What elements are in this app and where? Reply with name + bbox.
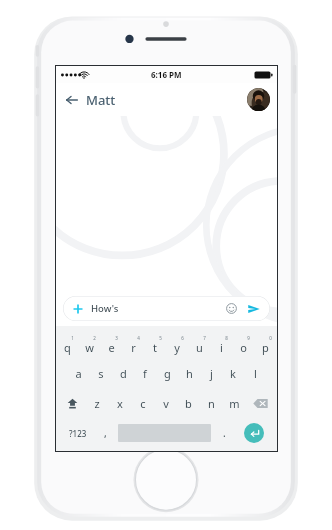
staticText: 8 xyxy=(225,335,228,341)
staticText: 6 xyxy=(181,335,184,341)
staticText: e xyxy=(108,340,115,355)
staticText: 3 xyxy=(115,335,118,341)
button[interactable]: , xyxy=(96,418,115,448)
staticText: m xyxy=(229,396,240,411)
staticText: q xyxy=(64,340,71,355)
button[interactable]: b xyxy=(177,388,200,418)
button[interactable]: Profile xyxy=(247,88,270,111)
staticText: 9 xyxy=(247,335,250,341)
staticText: Matt xyxy=(86,91,116,109)
staticText: r xyxy=(131,340,136,355)
button[interactable]: 3 xyxy=(100,330,122,359)
staticText: h xyxy=(186,366,193,381)
staticText: x xyxy=(117,396,123,411)
button[interactable]: 1 xyxy=(57,330,78,359)
button[interactable]: z xyxy=(86,388,108,418)
button[interactable]: 0 xyxy=(254,330,276,359)
button[interactable]: Shift xyxy=(58,388,86,418)
button[interactable]: j xyxy=(200,359,222,388)
staticText: 0 xyxy=(269,335,272,341)
button[interactable]: Emoji xyxy=(224,301,239,316)
button[interactable]: 4 xyxy=(122,330,144,359)
staticText: 1 xyxy=(71,335,74,341)
staticText: z xyxy=(94,396,100,411)
button[interactable]: Matt xyxy=(86,91,116,109)
staticText: i xyxy=(220,340,223,355)
button[interactable]: l xyxy=(244,359,266,388)
staticText: ?123 xyxy=(69,428,87,439)
button[interactable]: 8 xyxy=(210,330,232,359)
button[interactable]: v xyxy=(154,388,177,418)
button[interactable]: f xyxy=(134,359,156,388)
staticText: o xyxy=(240,340,247,355)
button[interactable]: ?123 xyxy=(60,418,96,448)
staticText: 4 xyxy=(137,335,140,341)
staticText: w xyxy=(85,340,94,355)
button[interactable]: k xyxy=(222,359,244,388)
button[interactable]: h xyxy=(178,359,200,388)
staticText: . xyxy=(223,426,226,440)
button[interactable]: s xyxy=(90,359,112,388)
staticText: t xyxy=(153,340,157,355)
staticText: l xyxy=(254,366,257,381)
staticText: y xyxy=(174,340,180,355)
button[interactable]: Add attachment xyxy=(63,296,270,321)
button[interactable]: Backspace xyxy=(246,388,275,418)
button[interactable]: g xyxy=(156,359,178,388)
button[interactable]: d xyxy=(112,359,134,388)
staticText: c xyxy=(140,396,146,411)
staticText: a xyxy=(75,366,82,381)
staticText: 5 xyxy=(159,335,162,341)
button[interactable]: c xyxy=(131,388,154,418)
button[interactable]: 7 xyxy=(188,330,210,359)
staticText: j xyxy=(210,366,213,381)
staticText: 2 xyxy=(93,335,96,341)
button[interactable]: m xyxy=(223,388,246,418)
button[interactable]: Send xyxy=(246,301,262,317)
button[interactable]: a xyxy=(67,359,90,388)
staticText: n xyxy=(208,396,215,411)
button[interactable]: n xyxy=(200,388,223,418)
button[interactable]: Enter xyxy=(244,423,264,443)
button[interactable]: 9 xyxy=(232,330,254,359)
button[interactable]: . xyxy=(214,418,235,448)
button[interactable]: Back xyxy=(61,89,83,111)
button[interactable]: 5 xyxy=(144,330,166,359)
staticText: u xyxy=(196,340,203,355)
button[interactable]: 6 xyxy=(166,330,188,359)
staticText: 7 xyxy=(203,335,206,341)
staticText: v xyxy=(163,396,169,411)
staticText: p xyxy=(262,340,269,355)
staticText: d xyxy=(120,366,127,381)
staticText: b xyxy=(185,396,192,411)
staticText: k xyxy=(230,366,236,381)
staticText: , xyxy=(104,426,107,440)
button[interactable]: 2 xyxy=(78,330,100,359)
button[interactable]: Add attachment xyxy=(71,302,85,316)
staticText: f xyxy=(143,366,147,381)
staticText: s xyxy=(98,366,104,381)
staticText: How's xyxy=(91,302,119,315)
staticText: 6:16 PM xyxy=(151,69,182,80)
button[interactable]: x xyxy=(108,388,131,418)
staticText: g xyxy=(164,366,171,381)
